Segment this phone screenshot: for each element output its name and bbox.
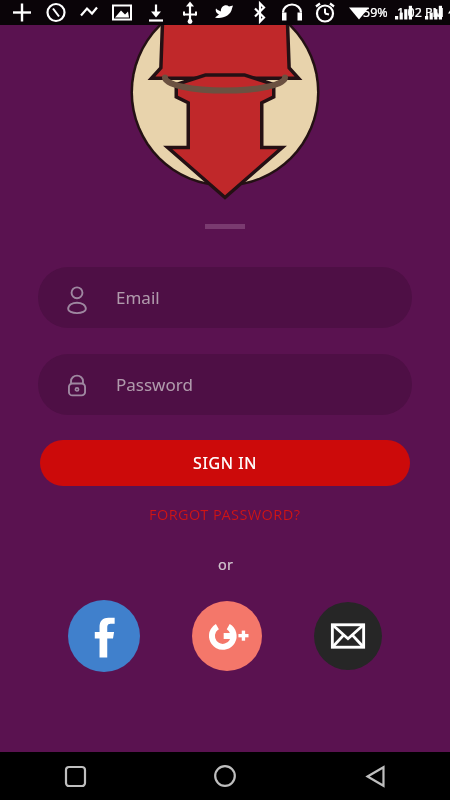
- button[interactable]: Sign in with Email: [314, 602, 382, 670]
- staticText: Password: [116, 373, 193, 396]
- button[interactable]: Recent apps: [0, 752, 150, 800]
- button[interactable]: Email: [38, 267, 412, 328]
- staticText: Email: [116, 286, 160, 309]
- staticText: 59%: [363, 4, 388, 21]
- staticText: SIGN IN: [193, 452, 257, 474]
- button[interactable]: Password: [38, 354, 412, 415]
- button[interactable]: Sign in with Facebook: [68, 600, 140, 672]
- staticText: or: [218, 554, 233, 574]
- button[interactable]: Home: [150, 752, 300, 800]
- staticText: 1:02 PM: [397, 4, 444, 21]
- button[interactable]: FORGOT PASSWORD?: [139, 500, 311, 528]
- button[interactable]: Sign in with Google Plus: [192, 601, 262, 671]
- staticText: FORGOT PASSWORD?: [149, 504, 301, 524]
- button[interactable]: SIGN IN: [40, 440, 410, 486]
- button[interactable]: Back: [300, 752, 450, 800]
